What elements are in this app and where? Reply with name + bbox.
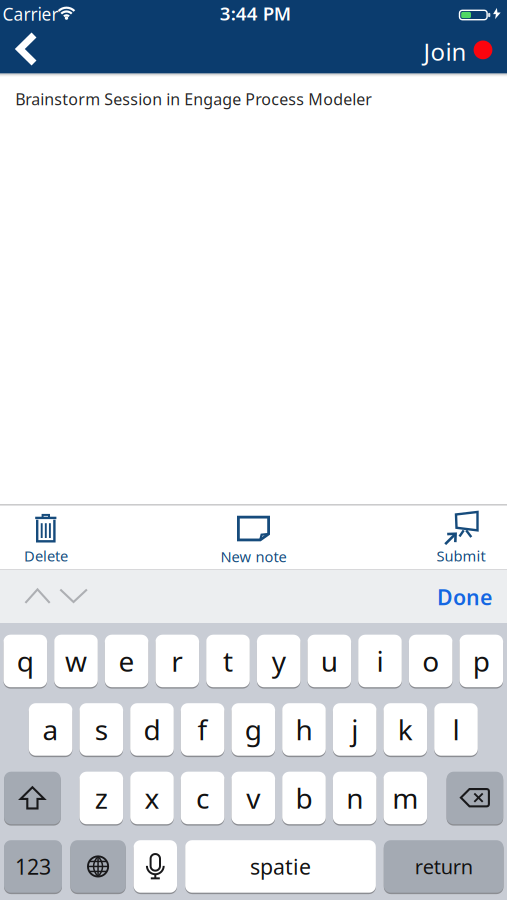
button[interactable]: o: [409, 634, 452, 688]
button[interactable]: d: [130, 702, 174, 756]
staticText: t: [223, 642, 233, 680]
button[interactable]: e: [105, 634, 148, 688]
staticText: j: [351, 711, 358, 748]
button[interactable]: r: [155, 634, 199, 688]
button[interactable]: [19, 581, 55, 611]
staticText: Done: [437, 583, 492, 611]
button[interactable]: f: [181, 702, 224, 756]
button[interactable]: b: [282, 771, 326, 825]
button[interactable]: [4, 771, 61, 825]
button[interactable]: p: [459, 634, 503, 688]
staticText: r: [171, 642, 183, 680]
button[interactable]: j: [333, 702, 376, 756]
staticText: spatie: [250, 852, 311, 881]
staticText: f: [198, 711, 208, 748]
button[interactable]: a: [29, 702, 72, 756]
button[interactable]: h: [282, 702, 326, 756]
button[interactable]: u: [307, 634, 351, 688]
button[interactable]: [55, 581, 91, 611]
button[interactable]: [70, 839, 126, 893]
button[interactable]: y: [257, 634, 300, 688]
staticText: m: [392, 779, 418, 817]
button[interactable]: q: [3, 634, 47, 688]
button[interactable]: t: [206, 634, 250, 688]
staticText: 3:44 PM: [220, 1, 291, 26]
button[interactable]: [447, 771, 503, 825]
button[interactable]: g: [231, 702, 275, 756]
staticText: w: [65, 642, 87, 680]
button[interactable]: New note: [203, 515, 303, 567]
staticText: e: [119, 642, 135, 680]
button[interactable]: return: [384, 839, 503, 893]
button[interactable]: [6, 27, 46, 71]
staticText: Join: [424, 35, 467, 67]
button[interactable]: x: [130, 771, 174, 825]
staticText: Carrier: [2, 2, 58, 25]
button[interactable]: [134, 839, 177, 893]
staticText: c: [196, 779, 209, 817]
staticText: g: [245, 711, 262, 748]
button[interactable]: Delete: [1, 514, 91, 566]
staticText: z: [95, 779, 108, 817]
staticText: k: [398, 711, 413, 748]
button[interactable]: spatie: [185, 839, 376, 893]
staticText: l: [452, 711, 459, 748]
staticText: h: [295, 711, 312, 748]
staticText: i: [376, 642, 383, 680]
button[interactable]: v: [231, 771, 275, 825]
staticText: v: [246, 779, 260, 817]
button[interactable]: n: [333, 771, 376, 825]
button[interactable]: Done: [426, 577, 502, 617]
button[interactable]: s: [79, 702, 123, 756]
staticText: n: [346, 779, 363, 817]
button[interactable]: c: [181, 771, 224, 825]
button[interactable]: i: [358, 634, 402, 688]
staticText: 123: [15, 852, 51, 881]
staticText: Brainstorm Session in Engage Process Mod…: [15, 88, 372, 110]
staticText: Submit: [436, 546, 485, 566]
staticText: u: [321, 642, 338, 680]
staticText: a: [43, 711, 59, 748]
staticText: q: [17, 642, 34, 680]
button[interactable]: 123: [4, 839, 62, 893]
button[interactable]: k: [383, 702, 427, 756]
button[interactable]: z: [79, 771, 123, 825]
button[interactable]: Join: [424, 29, 492, 73]
staticText: x: [144, 779, 159, 817]
staticText: return: [415, 853, 473, 880]
staticText: o: [422, 642, 439, 680]
staticText: Delete: [24, 546, 68, 565]
button[interactable]: m: [383, 771, 427, 825]
button[interactable]: w: [54, 634, 98, 688]
staticText: d: [143, 711, 160, 748]
button[interactable]: l: [434, 702, 478, 756]
button[interactable]: Submit: [416, 510, 506, 566]
staticText: b: [295, 779, 312, 817]
staticText: p: [473, 642, 490, 680]
staticText: y: [272, 642, 286, 680]
staticText: s: [95, 711, 108, 748]
staticText: New note: [220, 547, 286, 566]
